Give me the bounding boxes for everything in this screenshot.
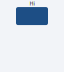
staticText: Hi bbox=[29, 0, 34, 7]
